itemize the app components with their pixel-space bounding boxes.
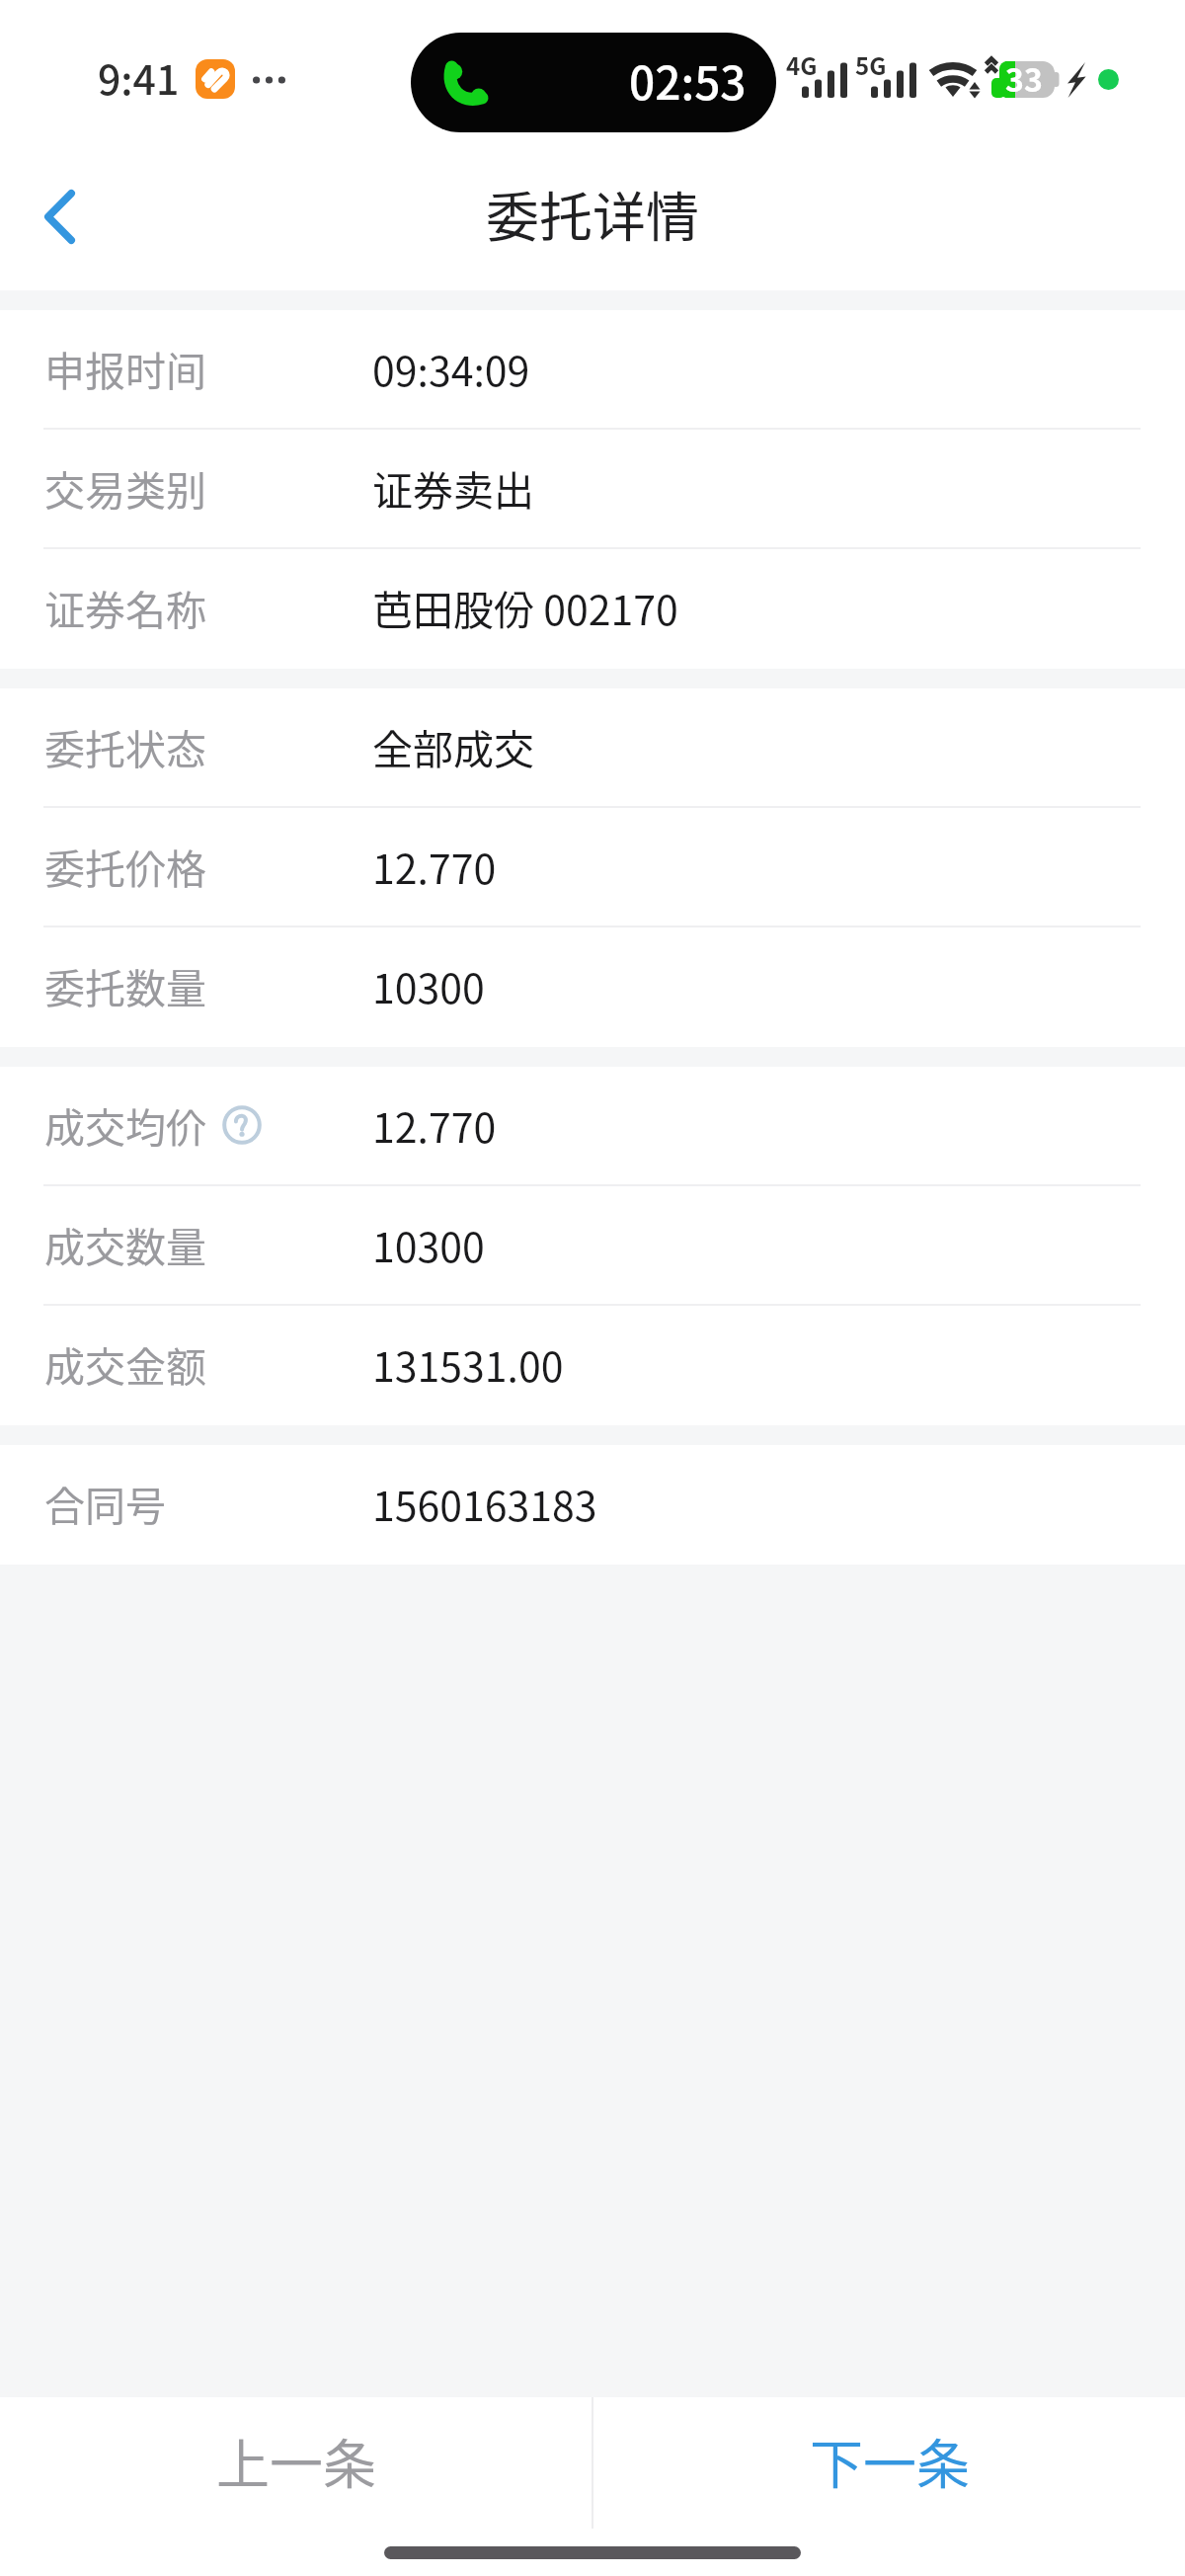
- staticText: 成交均价: [44, 1095, 206, 1154]
- staticText: 成交金额: [44, 1334, 206, 1393]
- staticText: 成交数量: [44, 1215, 206, 1273]
- staticText: 10300: [372, 1215, 485, 1273]
- button[interactable]: 下一条: [593, 2397, 1185, 2529]
- staticText: 131531.00: [372, 1334, 564, 1393]
- button[interactable]: 申报时间: [0, 310, 1185, 430]
- staticText: 委托详情: [486, 175, 699, 252]
- button[interactable]: Back: [0, 160, 119, 280]
- staticText: 02:53: [629, 47, 747, 114]
- staticText: 4G: [786, 47, 818, 82]
- button[interactable]: 交易类别: [0, 430, 1185, 549]
- button[interactable]: 合同号: [0, 1445, 1185, 1565]
- staticText: 合同号: [44, 1474, 166, 1532]
- staticText: 交易类别: [44, 458, 206, 517]
- button[interactable]: 证券名称: [0, 549, 1185, 669]
- staticText: 1560163183: [372, 1474, 597, 1532]
- button[interactable]: 成交数量: [0, 1186, 1185, 1306]
- staticText: 9:41: [98, 47, 180, 106]
- staticText: 委托价格: [44, 837, 206, 895]
- button[interactable]: 委托状态: [0, 688, 1185, 808]
- staticText: 5G: [855, 47, 887, 82]
- staticText: 证券卖出: [372, 458, 534, 517]
- staticText: 09:34:09: [372, 339, 530, 397]
- button[interactable]: 上一条: [0, 2397, 592, 2529]
- button[interactable]: 成交金额: [0, 1306, 1185, 1425]
- staticText: 委托状态: [44, 717, 206, 775]
- staticText: 申报时间: [44, 339, 206, 397]
- staticText: 委托数量: [44, 956, 206, 1014]
- staticText: 12.770: [372, 1095, 497, 1154]
- staticText: 上一条: [216, 2422, 376, 2499]
- staticText: 全部成交: [372, 717, 534, 775]
- button[interactable]: 成交均价: [0, 1067, 1185, 1186]
- button[interactable]: 委托价格: [0, 808, 1185, 927]
- staticText: 12.770: [372, 837, 497, 895]
- staticText: 芭田股份 002170: [372, 578, 678, 636]
- staticText: 证券名称: [44, 578, 206, 636]
- staticText: 下一条: [810, 2422, 970, 2499]
- button[interactable]: 委托数量: [0, 927, 1185, 1047]
- staticText: 10300: [372, 956, 485, 1014]
- staticText: 33: [1005, 55, 1043, 101]
